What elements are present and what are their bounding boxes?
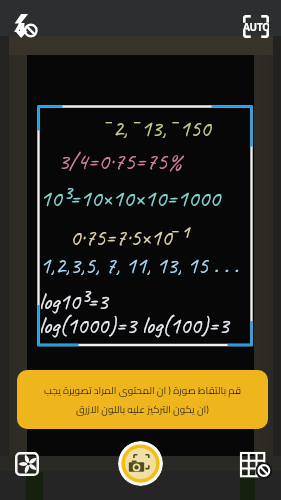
- staticText: log10³=3: [39, 287, 108, 316]
- staticText: قم بالتقاط صورة ( ان المحتوى المراد تصوي…: [44, 381, 241, 419]
- staticText: AUTO: [243, 20, 269, 34]
- staticText: 10³=10×10×10=1000: [40, 183, 221, 213]
- button[interactable]: قم بالتقاط صورة ( ان المحتوى المراد تصوي…: [17, 370, 268, 429]
- button[interactable]: Gallery: [10, 447, 43, 480]
- button[interactable]: Shutter: [118, 441, 163, 486]
- staticText: log(1000)=3 log(100)=3: [39, 311, 229, 340]
- button[interactable]: Flash off: [8, 11, 45, 39]
- staticText: 1,2,3,5, 7, 11, 13, 15 . . .: [40, 251, 239, 280]
- staticText: 0·75=7·5×10⁻¹: [70, 220, 187, 251]
- staticText: ⁻2, ⁻13, ⁻150: [105, 111, 211, 142]
- button[interactable]: Auto capture: [238, 12, 274, 40]
- staticText: 3/4=0·75=75%: [58, 146, 182, 176]
- button[interactable]: Grid off: [240, 450, 271, 481]
